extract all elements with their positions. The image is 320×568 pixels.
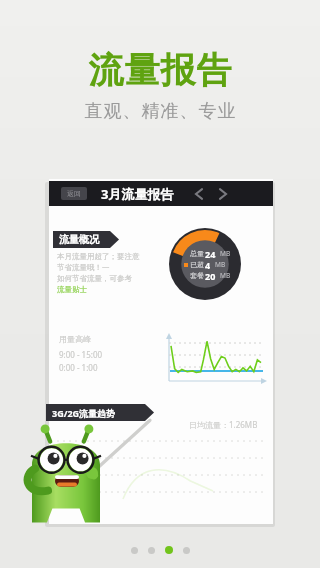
staticText: 流量概况	[59, 233, 99, 246]
staticText: 用量高峰	[59, 334, 91, 344]
staticText: 流量贴士	[57, 285, 87, 294]
staticText: MB	[220, 271, 231, 280]
staticText: MB	[220, 249, 231, 258]
button[interactable]: Page 3	[165, 546, 173, 554]
staticText: 返回	[67, 189, 81, 198]
staticText: 0:00 - 1:00	[59, 362, 98, 373]
button[interactable]: 返回	[49, 181, 273, 206]
staticText: 20	[205, 270, 216, 281]
staticText: 总量	[190, 249, 204, 258]
button[interactable]: 3G/2G流量趋势	[46, 404, 154, 421]
button[interactable]: Page 4	[183, 547, 190, 554]
button[interactable]: Next month	[214, 185, 232, 203]
staticText: 直观、精准、专业	[84, 100, 236, 123]
staticText: 3月流量报告	[101, 185, 174, 203]
staticText: MB	[215, 260, 226, 269]
staticText: 本月流量用超了；要注意	[57, 252, 140, 261]
button[interactable]: Page 1	[131, 547, 138, 554]
staticText: 如何节省流量，可参考	[57, 274, 132, 283]
staticText: 9:00 - 15:00	[59, 349, 103, 360]
staticText: 3G/2G流量趋势	[52, 407, 116, 419]
staticText: 套餐	[190, 271, 204, 280]
button[interactable]: Previous month	[190, 185, 208, 203]
staticText: 节省流量哦！一	[57, 263, 110, 272]
button[interactable]: 流量概况	[53, 231, 119, 248]
button[interactable]: 流量贴士	[57, 285, 87, 294]
staticText: 24	[205, 248, 216, 259]
button[interactable]: 返回	[61, 187, 87, 200]
button[interactable]: Page 2	[148, 547, 155, 554]
staticText: 流量报告	[88, 48, 232, 92]
staticText: 已超	[190, 260, 204, 269]
staticText: 日均流量：1.26MB	[189, 419, 258, 430]
staticText: 4	[205, 259, 211, 270]
